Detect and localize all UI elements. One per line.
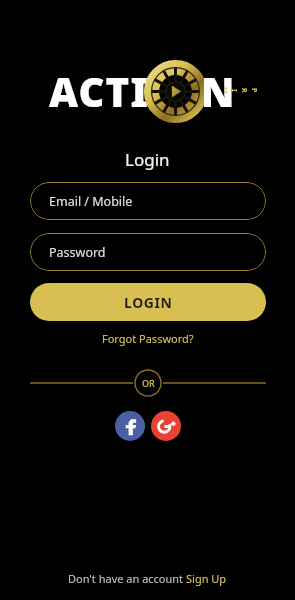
staticText: N (201, 64, 235, 118)
staticText: PRIME (225, 86, 259, 96)
staticText: Login (125, 148, 170, 171)
staticText: LOGIN (124, 293, 173, 312)
staticText: Sign Up (186, 571, 227, 586)
staticText: Don't have an account (68, 571, 186, 586)
button[interactable]: Sign Up (186, 571, 227, 586)
button[interactable]: Forgot Password? (96, 329, 200, 348)
button[interactable]: Password (30, 233, 266, 271)
staticText: ACTI (49, 64, 150, 118)
button[interactable]: Sign in with Facebook (115, 411, 145, 441)
button[interactable]: LOGIN (30, 283, 266, 321)
staticText: Email / Mobile (49, 193, 133, 210)
button[interactable]: Sign in with Google Plus (151, 411, 181, 441)
staticText: Forgot Password? (102, 331, 194, 346)
staticText: Password (49, 244, 106, 261)
button[interactable]: Email / Mobile (30, 182, 266, 220)
staticText: OR (142, 377, 155, 389)
